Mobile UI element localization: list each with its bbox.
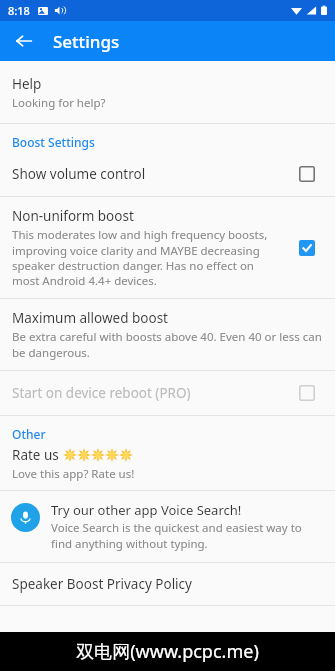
button[interactable]: Start on device reboot (PRO): [0, 371, 335, 415]
staticText: Love this app? Rate us!: [12, 466, 135, 482]
staticText: Rate us: [12, 446, 63, 464]
button[interactable]: Unchecked: [287, 373, 327, 413]
button[interactable]: Rate us: [0, 444, 335, 490]
staticText: This moderates low and high frequency bo…: [12, 227, 281, 288]
staticText: 双电网(www.pcpc.me): [76, 639, 259, 664]
staticText: Other: [12, 426, 46, 442]
staticText: Non-uniform boost: [12, 207, 134, 225]
button[interactable]: Non-uniform boost: [0, 197, 335, 298]
button[interactable]: Maximum allowed boost: [0, 299, 335, 370]
button[interactable]: Show volume control: [0, 152, 335, 196]
button[interactable]: Checked: [287, 228, 327, 268]
staticText: Looking for help?: [12, 95, 106, 111]
button[interactable]: Speaker Boost Privacy Policy: [0, 563, 335, 605]
staticText: Start on device reboot (PRO): [12, 384, 191, 402]
staticText: Settings: [53, 30, 120, 53]
staticText: Be extra careful with boosts above 40. E…: [12, 329, 327, 360]
button[interactable]: Back: [8, 25, 40, 57]
staticText: Show volume control: [12, 165, 146, 183]
staticText: Voice Search is the quickest and easiest…: [51, 520, 325, 551]
button[interactable]: Try our other app Voice Search!: [0, 491, 335, 562]
staticText: Try our other app Voice Search!: [51, 501, 242, 519]
staticText: Speaker Boost Privacy Policy: [12, 575, 192, 593]
button[interactable]: Unchecked: [287, 154, 327, 194]
staticText: Boost Settings: [12, 134, 95, 150]
staticText: Help: [12, 75, 42, 93]
staticText: Maximum allowed boost: [12, 309, 168, 327]
button[interactable]: Help: [0, 69, 335, 119]
staticText: 8:18: [8, 3, 30, 18]
